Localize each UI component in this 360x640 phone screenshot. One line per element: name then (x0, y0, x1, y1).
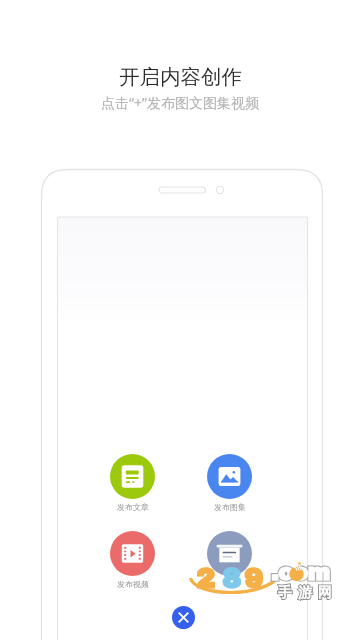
staticText: 8 (222, 563, 241, 593)
staticText: 9 (244, 563, 263, 593)
button[interactable]: 发布视频 (110, 531, 155, 589)
button[interactable]: 发布图集 (207, 454, 252, 512)
staticText: 手游网 (275, 584, 335, 602)
staticText: 发布文章 (117, 502, 149, 512)
staticText: 发布图集 (214, 502, 246, 512)
button[interactable]: Close (172, 606, 195, 629)
button[interactable] (207, 531, 252, 576)
staticText: 开启内容创作 (119, 64, 242, 90)
staticText: 发布视频 (117, 579, 149, 589)
staticText: 手游网 (275, 584, 335, 602)
button[interactable]: 发布文章 (110, 454, 155, 512)
staticText: 2 (196, 563, 215, 593)
staticText: .com (271, 561, 330, 585)
staticText: .com (271, 561, 330, 585)
staticText: 点击“+”发布图文图集视频 (101, 93, 260, 112)
